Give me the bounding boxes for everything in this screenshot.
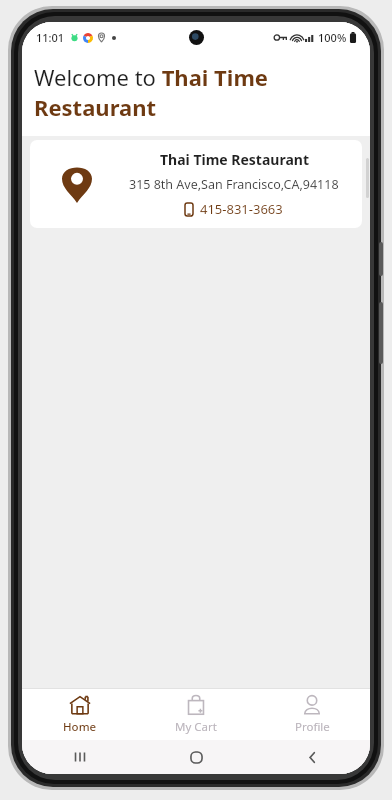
button[interactable]: 415-831-3663 [185, 200, 283, 218]
staticText: Profile [295, 719, 330, 735]
button[interactable]: My Cart [138, 689, 254, 740]
button[interactable]: Profile [254, 689, 370, 740]
staticText: 100% [318, 30, 347, 45]
staticText: 11:01 [36, 30, 65, 45]
staticText: Home [63, 719, 97, 735]
staticText: My Cart [175, 719, 217, 735]
staticText: 415-831-3663 [200, 200, 283, 218]
button[interactable]: Back [254, 740, 370, 774]
staticText: 315 8th Ave,San Francisco,CA,94118 [129, 176, 339, 193]
button[interactable]: Home [138, 740, 254, 774]
staticText: Thai Time Restaurant [160, 150, 309, 169]
button[interactable]: Thai Time Restaurant [30, 140, 362, 228]
staticText: Welcome to Thai Time Restaurant [34, 62, 358, 122]
button[interactable]: Home [22, 689, 138, 740]
button[interactable]: Recents [22, 740, 138, 774]
